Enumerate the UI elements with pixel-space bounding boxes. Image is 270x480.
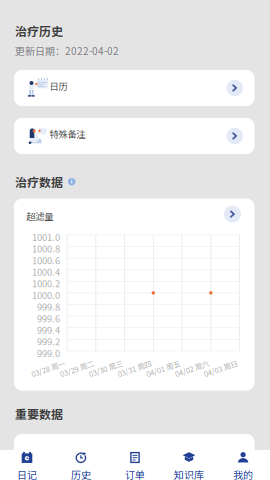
staticText: 03/28 周一 xyxy=(30,363,65,374)
staticText: 999.2 xyxy=(37,334,60,348)
staticText: 999.0 xyxy=(37,346,60,360)
staticText: 999.8 xyxy=(37,300,60,313)
staticText: 999.4 xyxy=(37,323,60,336)
staticText: 999.6 xyxy=(37,311,60,325)
staticText: 1001.0 xyxy=(32,230,60,244)
button[interactable]: 知识库 xyxy=(162,450,216,480)
staticText: 日历 xyxy=(49,79,67,92)
staticText: 特殊备注 xyxy=(49,127,85,140)
staticText: 03/31 周四 xyxy=(117,363,152,374)
button[interactable]: 日历 xyxy=(14,70,254,106)
staticText: 超滤量 xyxy=(26,209,53,223)
button[interactable]: 特殊备注 xyxy=(14,118,254,154)
staticText: 03/29 周二 xyxy=(59,363,94,374)
staticText: 04/01 周五 xyxy=(145,363,180,374)
staticText: 更新日期：2022-04-02 xyxy=(15,43,119,58)
staticText: 我的 xyxy=(233,467,253,480)
staticText: 03/30 周三 xyxy=(88,363,123,374)
staticText: 1000.4 xyxy=(32,265,60,278)
staticText: 1000.2 xyxy=(32,276,60,290)
staticText: 1000.8 xyxy=(32,242,60,255)
staticText: 日记 xyxy=(17,467,37,480)
button[interactable]: 历史 xyxy=(54,450,108,480)
button[interactable]: 日记 xyxy=(0,450,54,480)
button[interactable]: 订单 xyxy=(108,450,162,480)
button[interactable]: 我的 xyxy=(216,450,270,480)
staticText: 1000.6 xyxy=(32,253,60,267)
staticText: 订单 xyxy=(125,467,145,480)
staticText: 治疗数据 xyxy=(15,173,63,190)
staticText: 知识库 xyxy=(174,467,204,480)
staticText: 治疗历史 xyxy=(15,22,63,39)
staticText: 历史 xyxy=(71,467,91,480)
staticText: 04/03 周日 xyxy=(203,363,238,374)
staticText: 04/02 周六 xyxy=(174,363,209,374)
staticText: 重要数据 xyxy=(15,405,63,422)
staticText: 1000.0 xyxy=(32,288,60,302)
